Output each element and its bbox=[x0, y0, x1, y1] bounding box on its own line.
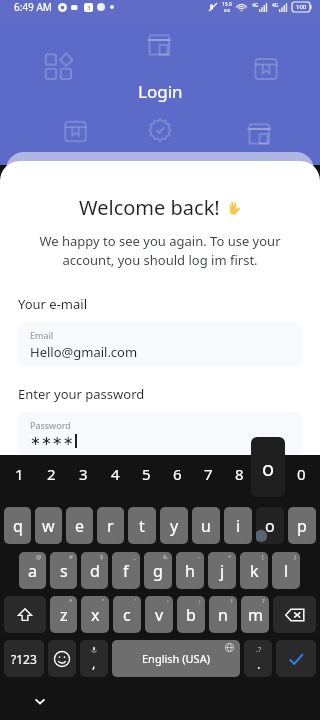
staticText: 2 bbox=[47, 464, 56, 484]
staticText: _ bbox=[133, 553, 136, 561]
staticText: l bbox=[284, 560, 289, 582]
button[interactable]: h bbox=[176, 552, 204, 589]
button[interactable]: j bbox=[208, 552, 236, 589]
button[interactable]: v bbox=[145, 596, 173, 633]
staticText: Password bbox=[30, 419, 71, 431]
staticText: English (USA) bbox=[142, 651, 210, 666]
staticText: 0 bbox=[297, 464, 306, 484]
staticText: ?123 bbox=[11, 651, 37, 667]
staticText: ' bbox=[135, 597, 137, 605]
staticText: . bbox=[257, 655, 261, 673]
button[interactable]: 1 bbox=[3, 455, 35, 493]
button[interactable]: 9 bbox=[255, 455, 286, 493]
button[interactable]: y bbox=[160, 507, 188, 544]
button[interactable]: z bbox=[50, 596, 77, 633]
staticText: Hello@gmail.com bbox=[30, 343, 138, 361]
button[interactable]: q bbox=[4, 507, 31, 544]
button[interactable]: 3 bbox=[67, 455, 99, 493]
staticText: s bbox=[60, 560, 68, 582]
staticText: z bbox=[60, 604, 68, 626]
button[interactable]: p bbox=[288, 507, 316, 544]
button[interactable]: 0 bbox=[286, 455, 317, 493]
button[interactable]: a bbox=[19, 552, 46, 589]
button[interactable]: 6 bbox=[162, 455, 193, 493]
button[interactable]: 8 bbox=[224, 455, 255, 493]
staticText: Email bbox=[30, 329, 54, 341]
staticText: o bbox=[262, 455, 275, 482]
button[interactable]: k bbox=[240, 552, 268, 589]
staticText: w bbox=[42, 515, 55, 537]
button[interactable]: n bbox=[209, 596, 237, 633]
staticText: 8 bbox=[235, 464, 244, 484]
staticText: : bbox=[167, 597, 169, 605]
staticText: 6:49 AM bbox=[14, 0, 52, 14]
button[interactable]: r bbox=[97, 507, 124, 544]
staticText: " bbox=[102, 597, 105, 605]
staticText: x bbox=[91, 604, 100, 626]
button[interactable]: e bbox=[66, 507, 93, 544]
staticText: 5 bbox=[142, 464, 151, 484]
staticText: ; bbox=[199, 597, 201, 605]
button[interactable]: u bbox=[192, 507, 220, 544]
staticText: 3 bbox=[87, 4, 91, 12]
button[interactable]: 7 bbox=[193, 455, 224, 493]
staticText: ( bbox=[262, 553, 264, 561]
staticText: 3 bbox=[79, 464, 88, 484]
staticText: 15.9 bbox=[222, 1, 232, 8]
button[interactable]: f bbox=[112, 552, 140, 589]
button[interactable]: x bbox=[81, 596, 109, 633]
staticText: k bbox=[250, 560, 259, 582]
button[interactable]: Shift bbox=[4, 596, 46, 633]
button[interactable]: w bbox=[35, 507, 62, 544]
staticText: 4G bbox=[252, 2, 259, 9]
staticText: * bbox=[69, 597, 73, 605]
button[interactable]: i bbox=[224, 507, 252, 544]
button[interactable]: 5 bbox=[131, 455, 162, 493]
staticText: u bbox=[201, 515, 211, 537]
button[interactable]: .? bbox=[244, 640, 272, 677]
staticText: i bbox=[236, 515, 241, 537]
staticText: - bbox=[198, 553, 200, 561]
button[interactable]: Hide keyboard bbox=[28, 689, 52, 713]
staticText: @ bbox=[36, 553, 42, 561]
button[interactable]: d bbox=[81, 552, 108, 589]
button[interactable]: Backspace bbox=[273, 596, 316, 633]
staticText: We happy to see you again. To use your a… bbox=[28, 232, 292, 269]
staticText: o bbox=[265, 515, 275, 537]
staticText: + bbox=[228, 553, 232, 561]
staticText: 100 bbox=[296, 3, 307, 11]
button[interactable]: t bbox=[128, 507, 156, 544]
staticText: n bbox=[218, 604, 228, 626]
staticText: 4 bbox=[111, 464, 120, 484]
staticText: 9 bbox=[266, 464, 275, 484]
staticText: ! bbox=[231, 597, 233, 605]
button[interactable]: , bbox=[80, 640, 108, 677]
staticText: $ bbox=[100, 553, 104, 561]
button[interactable]: 4 bbox=[99, 455, 131, 493]
staticText: q bbox=[13, 515, 23, 537]
staticText: t bbox=[139, 515, 145, 537]
button[interactable]: Email bbox=[18, 322, 302, 367]
button[interactable]: m bbox=[241, 596, 269, 633]
button[interactable]: ?123 bbox=[4, 640, 44, 677]
staticText: v bbox=[155, 604, 164, 626]
staticText: a bbox=[28, 560, 37, 582]
staticText: ? bbox=[262, 597, 265, 605]
staticText: b bbox=[186, 604, 196, 626]
staticText: 1 bbox=[15, 464, 24, 484]
button[interactable]: l bbox=[272, 552, 300, 589]
button[interactable]: Password bbox=[18, 412, 302, 457]
button[interactable]: Emoji bbox=[48, 640, 76, 677]
button[interactable]: s bbox=[50, 552, 77, 589]
staticText: K/S bbox=[224, 8, 231, 13]
staticText: Enter your password bbox=[18, 385, 145, 403]
button[interactable]: o bbox=[256, 507, 284, 544]
staticText: .? bbox=[256, 645, 261, 655]
button[interactable]: c bbox=[113, 596, 141, 633]
staticText: f bbox=[123, 560, 129, 582]
button[interactable]: b bbox=[177, 596, 205, 633]
button[interactable]: g bbox=[144, 552, 172, 589]
button[interactable]: Enter bbox=[276, 640, 316, 677]
button[interactable]: 2 bbox=[35, 455, 67, 493]
button[interactable]: English (USA) bbox=[112, 640, 240, 677]
